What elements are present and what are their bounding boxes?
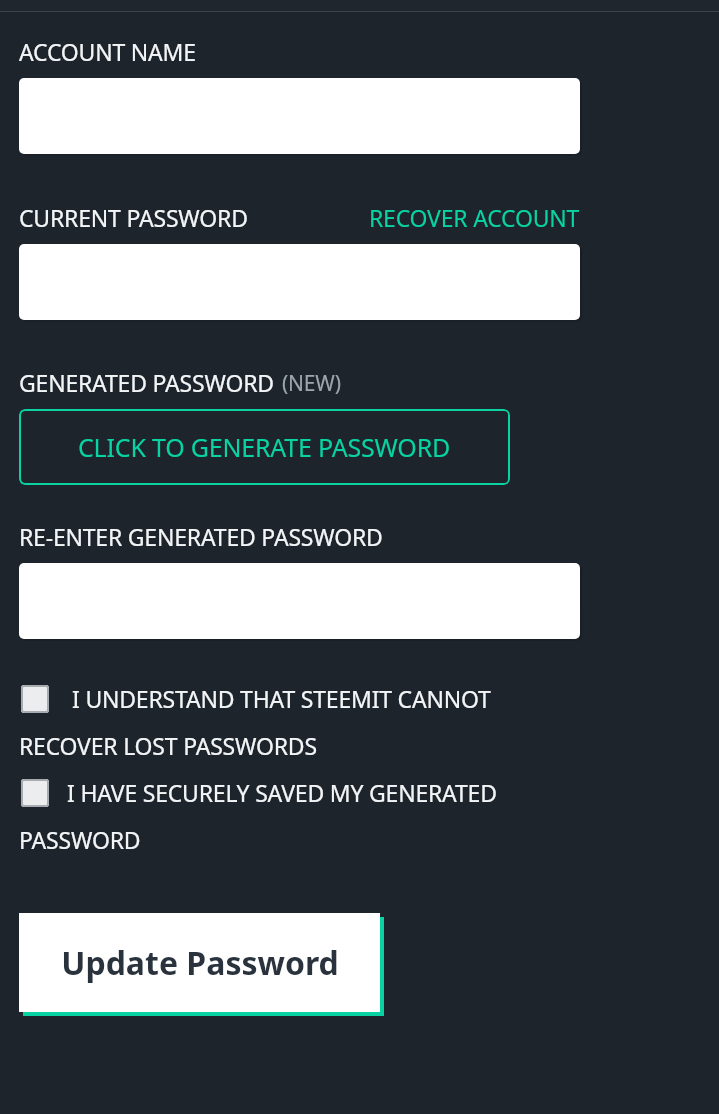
button[interactable]: RECOVER ACCOUNT xyxy=(369,202,580,233)
button[interactable]: CLICK TO GENERATE PASSWORD xyxy=(19,409,510,485)
staticText: RECOVER ACCOUNT xyxy=(369,202,580,233)
staticText: CURRENT PASSWORD xyxy=(19,202,248,233)
button[interactable] xyxy=(19,78,580,154)
staticText: (NEW) xyxy=(282,369,341,398)
button[interactable] xyxy=(19,244,580,320)
staticText: GENERATED PASSWORD xyxy=(19,367,274,398)
staticText: CLICK TO GENERATE PASSWORD xyxy=(78,430,451,464)
button[interactable]: Update Password xyxy=(19,913,384,1016)
staticText: ACCOUNT NAME xyxy=(19,36,196,67)
staticText: PASSWORD xyxy=(19,824,141,855)
staticText: RE-ENTER GENERATED PASSWORD xyxy=(19,521,383,552)
button[interactable]: Checkbox xyxy=(21,779,49,807)
button[interactable]: Checkbox xyxy=(19,683,580,761)
staticText: I UNDERSTAND THAT STEEMIT CANNOT xyxy=(72,683,491,714)
button[interactable]: Checkbox xyxy=(21,685,49,713)
staticText: I HAVE SECURELY SAVED MY GENERATED xyxy=(67,777,497,808)
button[interactable]: Checkbox xyxy=(19,777,580,855)
button[interactable] xyxy=(19,563,580,639)
staticText: Update Password xyxy=(61,941,339,985)
staticText: RECOVER LOST PASSWORDS xyxy=(19,730,317,761)
